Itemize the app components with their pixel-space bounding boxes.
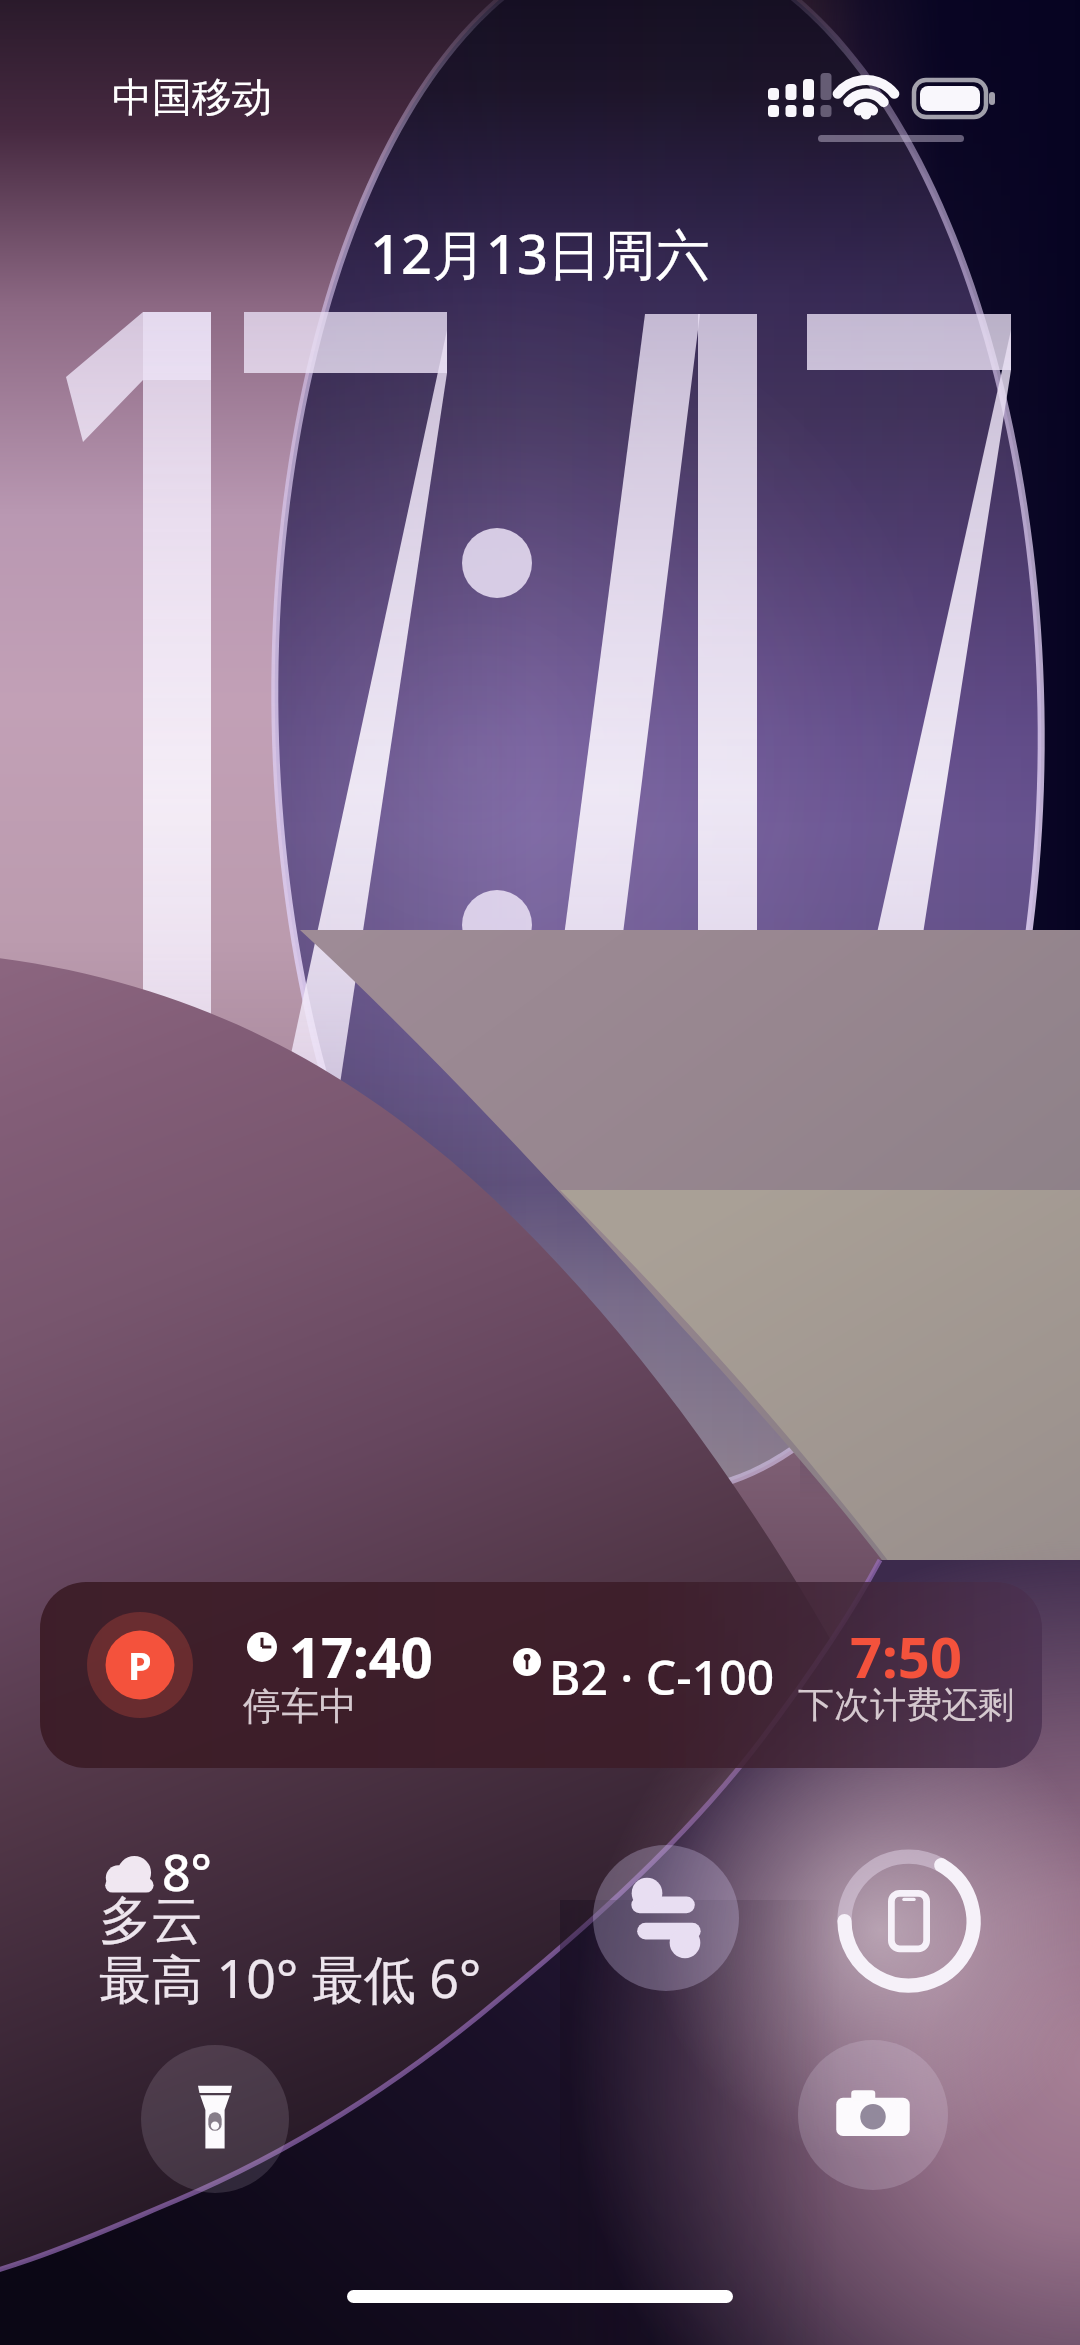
staticText: 最高 10° 最低 6° [99,1942,482,2013]
button[interactable]: P [40,1582,1042,1768]
staticText: 8° [162,1838,212,1906]
staticText: 12月13日周六 [0,216,1080,290]
staticText: 多云 [99,1888,203,1954]
button[interactable]: Flashlight [141,2045,289,2193]
staticText: 停车中 [243,1682,357,1730]
staticText: 下次计费还剩 [782,1682,1030,1727]
button[interactable]: Screen mirroring [834,1846,984,1996]
button[interactable]: Data transfer [593,1845,739,1991]
staticText: B2 · C-100 [549,1644,775,1709]
staticText: 7:50 [782,1618,1030,1694]
staticText: 中国移动 [112,72,272,122]
staticText: P [128,1639,152,1691]
staticText: 17:40 [289,1618,433,1694]
button[interactable]: Camera [798,2040,948,2190]
